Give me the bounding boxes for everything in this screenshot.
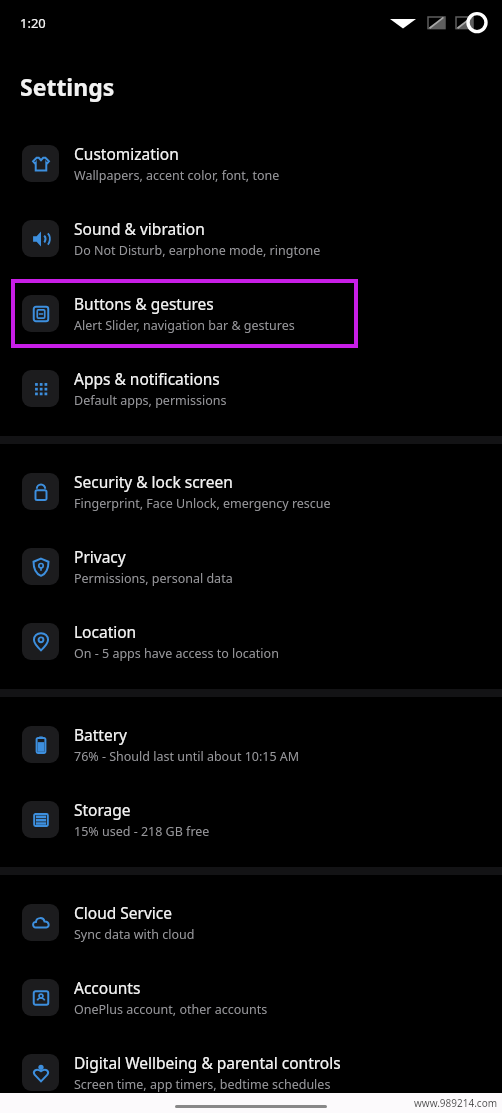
staticText: Security & lock screen (74, 471, 233, 492)
staticText: Accounts (74, 977, 141, 998)
staticText: Storage (74, 799, 131, 820)
staticText: Default apps, permissions (74, 392, 227, 409)
staticText: Cloud Service (74, 902, 173, 923)
staticText: On - 5 apps have access to location (74, 645, 279, 662)
staticText: OnePlus account, other accounts (74, 1001, 268, 1018)
button[interactable]: Security & lock screen (0, 454, 502, 529)
button[interactable]: Buttons & gestures (0, 276, 502, 351)
staticText: Screen time, app timers, bedtime schedul… (74, 1076, 331, 1093)
button[interactable]: Cloud Service (0, 885, 502, 960)
staticText: Battery (74, 724, 128, 745)
staticText: 15% used - 218 GB free (74, 823, 210, 840)
staticText: 76% - Should last until about 10:15 AM (74, 748, 300, 765)
staticText: Settings (20, 71, 115, 102)
staticText: Fingerprint, Face Unlock, emergency resc… (74, 495, 331, 512)
staticText: Privacy (74, 546, 126, 567)
button[interactable]: Sound & vibration (0, 201, 502, 276)
staticText: Buttons & gestures (74, 293, 214, 314)
staticText: Sound & vibration (74, 218, 205, 239)
staticText: Sync data with cloud (74, 926, 195, 943)
staticText: Do Not Disturb, earphone mode, ringtone (74, 242, 321, 259)
button[interactable]: Storage (0, 782, 502, 857)
button[interactable]: Customization (0, 126, 502, 201)
staticText: www.989214.com (414, 1096, 498, 1110)
button[interactable]: Location (0, 604, 502, 679)
staticText: Digital Wellbeing & parental controls (74, 1052, 341, 1073)
staticText: Customization (74, 143, 179, 164)
button[interactable]: Digital Wellbeing & parental controls (0, 1035, 502, 1110)
button[interactable]: Privacy (0, 529, 502, 604)
other: Home (175, 1105, 327, 1108)
staticText: Permissions, personal data (74, 570, 233, 587)
staticText: Apps & notifications (74, 368, 220, 389)
button[interactable]: Accounts (0, 960, 502, 1035)
button[interactable]: Battery (0, 707, 502, 782)
staticText: Location (74, 621, 137, 642)
staticText: 1:20 (20, 14, 46, 32)
staticText: Wallpapers, accent color, font, tone (74, 167, 280, 184)
staticText: Alert Slider, navigation bar & gestures (74, 317, 295, 334)
button[interactable]: Apps & notifications (0, 351, 502, 426)
